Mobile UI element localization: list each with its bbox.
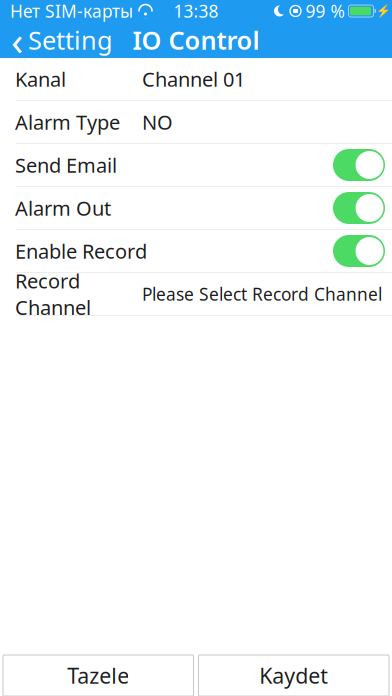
button[interactable]: Alarm Out bbox=[0, 187, 392, 229]
staticText: Enable Record bbox=[15, 238, 147, 264]
button[interactable]: Record Channel bbox=[0, 273, 392, 315]
button[interactable]: Kaydet bbox=[198, 655, 389, 696]
staticText: Kanal bbox=[15, 66, 66, 92]
staticText: ⚡ bbox=[376, 4, 391, 18]
staticText: Kaydet bbox=[259, 661, 328, 690]
staticText: Нет SIM-карты bbox=[10, 0, 133, 22]
staticText: Record Channel bbox=[15, 267, 91, 320]
staticText: Tazele bbox=[67, 661, 129, 690]
staticText: 13:38 bbox=[173, 0, 218, 22]
button[interactable]: Send Email bbox=[0, 144, 392, 186]
staticText: Setting bbox=[28, 23, 113, 57]
button[interactable]: Alarm Type bbox=[0, 101, 392, 143]
staticText: Alarm Type bbox=[15, 109, 120, 135]
button[interactable]: Kanal bbox=[0, 58, 392, 100]
staticText: IO Control bbox=[132, 23, 259, 57]
staticText: NO bbox=[142, 109, 173, 135]
staticText: ‹ bbox=[11, 13, 23, 66]
button[interactable]: ‹ bbox=[0, 22, 121, 58]
staticText: Please Select Record Channel bbox=[142, 282, 382, 305]
staticText: Send Email bbox=[15, 152, 117, 178]
button[interactable]: Enable Record bbox=[0, 230, 392, 272]
button[interactable]: Tazele bbox=[3, 655, 193, 696]
staticText: 99 % bbox=[305, 0, 344, 22]
staticText: Alarm Out bbox=[15, 195, 111, 221]
staticText: Channel 01 bbox=[142, 66, 245, 92]
